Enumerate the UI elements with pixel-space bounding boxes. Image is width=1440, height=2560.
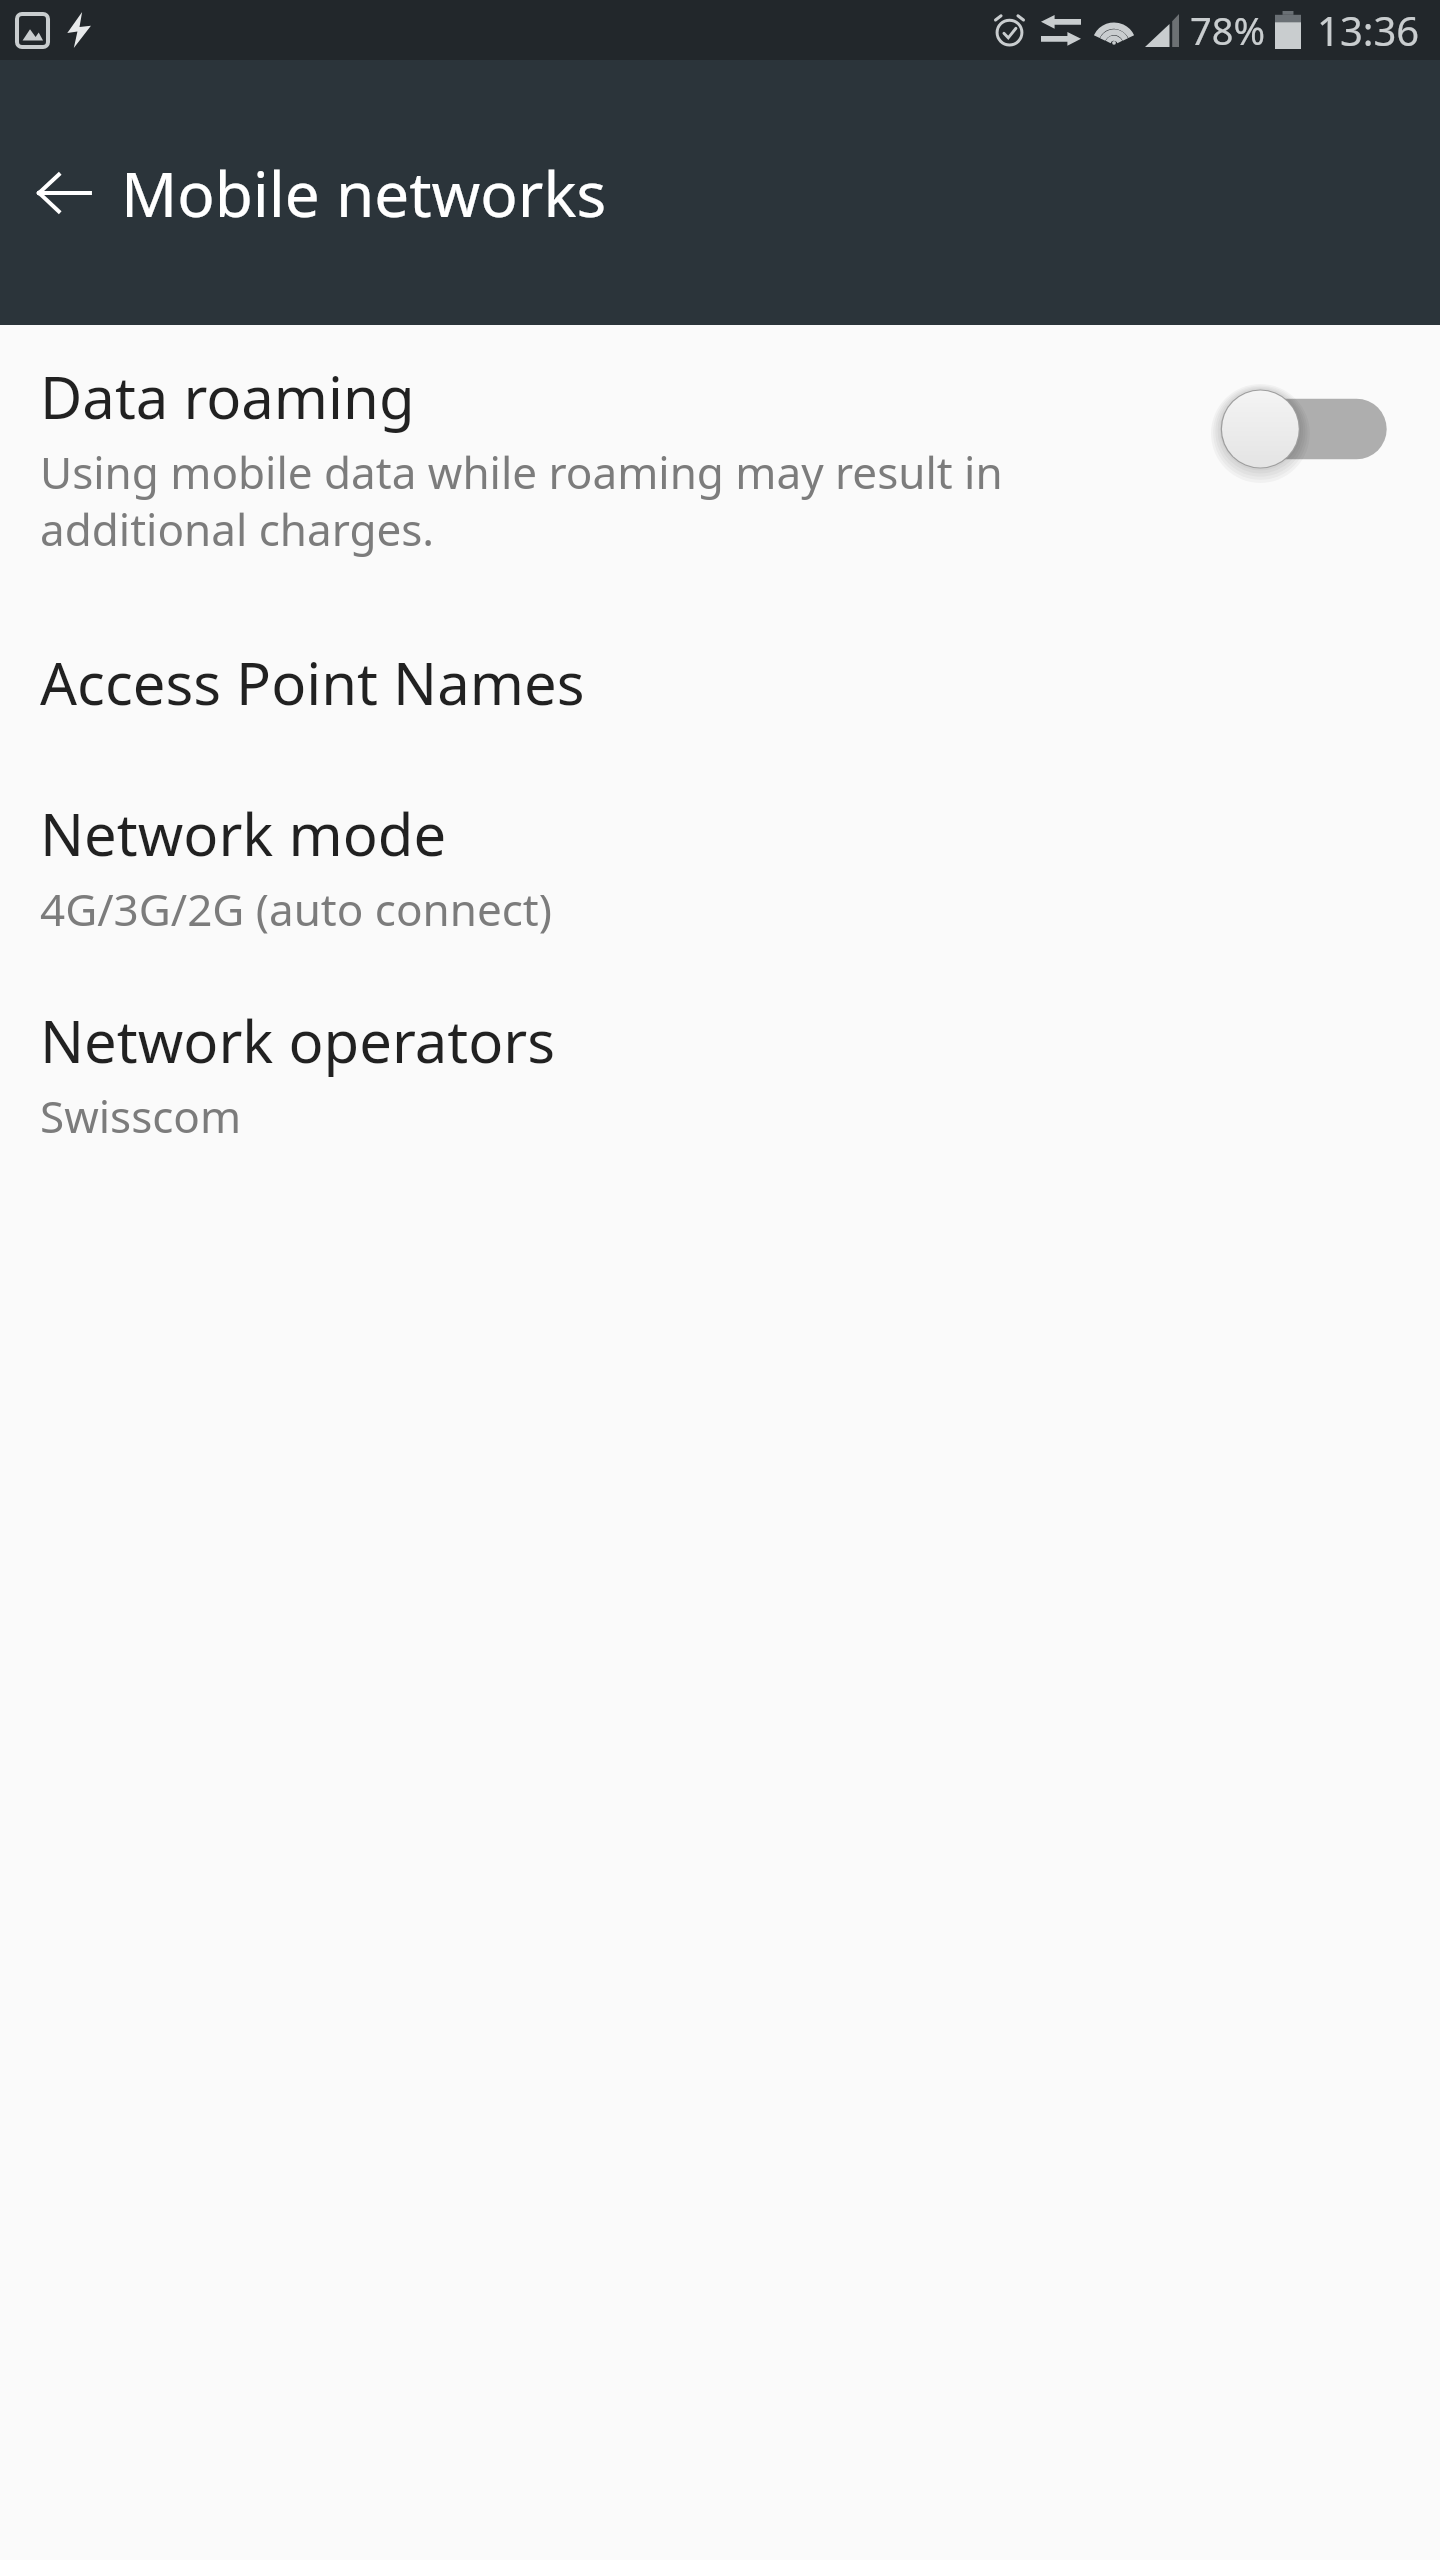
- staticText: 78%: [1190, 4, 1266, 56]
- button[interactable]: Back: [16, 145, 112, 241]
- staticText: Network mode: [40, 794, 447, 873]
- staticText: Mobile networks: [121, 151, 607, 235]
- button[interactable]: Data roaming toggle: [1210, 381, 1400, 477]
- button[interactable]: Access Point Names: [0, 627, 1440, 738]
- staticText: 4G/3G/2G (auto connect): [40, 879, 552, 939]
- staticText: 13:36: [1317, 3, 1420, 57]
- button[interactable]: Network mode: [0, 778, 1440, 955]
- staticText: Data roaming: [40, 357, 415, 436]
- staticText: Swisscom: [40, 1086, 242, 1146]
- staticText: Network operators: [40, 1001, 555, 1080]
- staticText: Using mobile data while roaming may resu…: [40, 442, 1186, 559]
- button[interactable]: Network operators: [0, 985, 1440, 1162]
- button[interactable]: Data roaming: [0, 339, 1440, 577]
- staticText: Access Point Names: [40, 643, 585, 722]
